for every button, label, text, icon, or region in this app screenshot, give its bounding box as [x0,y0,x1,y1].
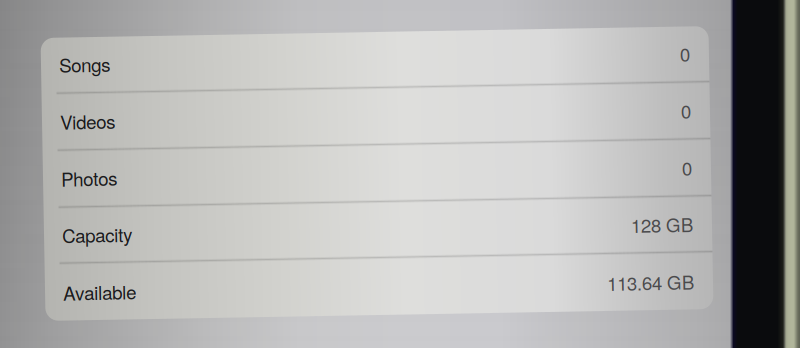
button[interactable]: Photos [43,146,711,203]
staticText: 0 [682,160,692,186]
staticText: Photos [61,160,117,186]
staticText: 113.64 GB [605,274,692,300]
staticText: Videos [61,103,116,129]
button[interactable]: Songs [43,32,711,89]
button[interactable]: Capacity [43,203,711,259]
button[interactable]: Available [43,259,711,315]
staticText: Songs [61,46,112,72]
staticText: 0 [682,103,692,129]
staticText: Capacity [61,216,131,243]
staticText: Available [61,274,134,300]
staticText: 128 GB [630,216,692,243]
staticText: 0 [682,46,692,72]
button[interactable]: Videos [43,89,711,146]
